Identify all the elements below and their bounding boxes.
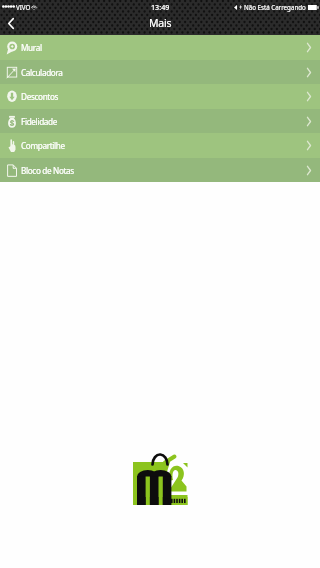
button[interactable]: Descontos <box>0 84 320 109</box>
button[interactable]: Bloco de Notas <box>0 158 320 182</box>
staticText: VIVO <box>16 3 31 11</box>
button[interactable]: Calculadora <box>0 60 320 84</box>
button[interactable]: Fidelidade <box>0 109 320 133</box>
staticText: Fidelidade <box>21 116 58 127</box>
staticText: Bloco de Notas <box>21 165 74 176</box>
button[interactable]: Compartilhe <box>0 133 320 158</box>
staticText: Mural <box>21 42 42 53</box>
staticText: Não Está Carregando <box>244 3 306 11</box>
staticText: Descontos <box>21 91 59 102</box>
staticText: Calculadora <box>21 67 63 78</box>
staticText: Mais <box>149 16 172 30</box>
button[interactable]: Back <box>0 15 24 35</box>
staticText: 13:49 <box>151 2 170 12</box>
staticText: Compartilhe <box>21 140 65 151</box>
button[interactable]: Mural <box>0 35 320 60</box>
